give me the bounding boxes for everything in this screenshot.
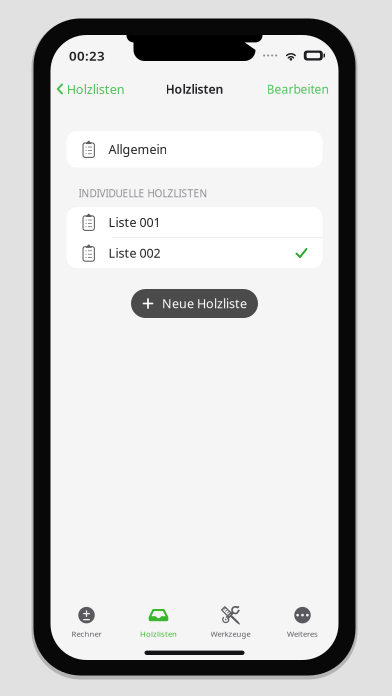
staticText: Weiteres: [287, 629, 318, 639]
button[interactable]: Neue Holzliste: [131, 289, 258, 318]
staticText: Liste 001: [108, 214, 160, 231]
button[interactable]: Liste 002: [66, 238, 322, 268]
button[interactable]: Holzlisten: [50, 73, 125, 105]
staticText: Rechner: [71, 629, 101, 639]
staticText: Allgemein: [108, 141, 167, 158]
staticText: Werkzeuge: [210, 629, 250, 639]
staticText: Neue Holzliste: [162, 295, 247, 312]
button[interactable]: Weiteres: [266, 607, 338, 639]
button[interactable]: Bearbeiten: [266, 74, 338, 104]
button[interactable]: Rechner: [50, 607, 122, 639]
staticText: Holzlisten: [165, 81, 223, 97]
button[interactable]: Werkzeuge: [194, 607, 266, 639]
staticText: Holzlisten: [140, 629, 177, 639]
staticText: INDIVIDUELLE HOLZLISTEN: [78, 186, 207, 200]
staticText: 00:23: [69, 46, 105, 65]
button[interactable]: Holzlisten: [122, 607, 194, 639]
staticText: Holzlisten: [67, 80, 125, 98]
button[interactable]: Liste 001: [66, 207, 322, 237]
staticText: Bearbeiten: [266, 81, 328, 97]
staticText: Liste 002: [108, 244, 160, 261]
button[interactable]: Allgemein: [66, 131, 322, 167]
